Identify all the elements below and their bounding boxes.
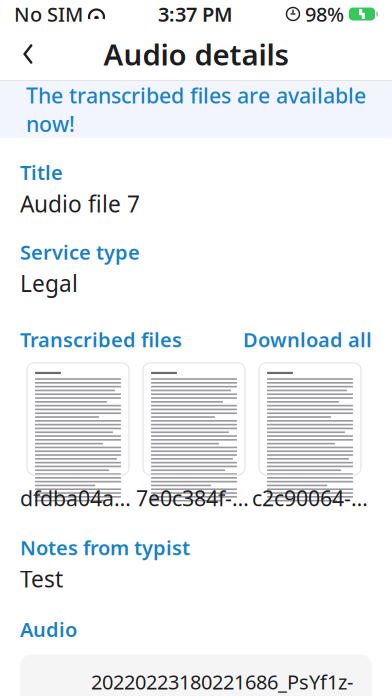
button[interactable]: 7e0c384f-77f5-… <box>136 363 252 512</box>
staticText: 98% <box>305 1 344 27</box>
staticText: Audio <box>20 616 77 642</box>
staticText: Download all <box>243 326 372 353</box>
staticText: Test <box>20 564 63 594</box>
staticText: Audio details <box>103 34 288 73</box>
staticText: No SIM <box>14 1 83 27</box>
staticText: Notes from typist <box>20 534 190 561</box>
button[interactable]: Back <box>6 32 50 76</box>
button[interactable]: dfdba04a-… <box>20 363 136 512</box>
staticText: dfdba04a-… <box>20 484 136 512</box>
staticText: 7e0c384f-77f5-… <box>136 484 252 512</box>
staticText: c2c90064-3135… <box>252 484 368 512</box>
button[interactable]: c2c90064-3135… <box>252 363 368 512</box>
staticText: The transcribed files are available now! <box>26 81 366 138</box>
staticText: Service type <box>20 239 140 265</box>
staticText: Title <box>20 159 63 186</box>
staticText: 20220223180221686_PsYf1zC4gUmSpuP2zeKVg.… <box>91 668 353 696</box>
staticText: Transcribed files <box>20 326 182 353</box>
staticText: 3:37 PM <box>158 1 233 27</box>
staticText: Legal <box>20 268 78 298</box>
staticText: Audio file 7 <box>20 189 140 219</box>
button[interactable]: Download all <box>243 326 372 353</box>
